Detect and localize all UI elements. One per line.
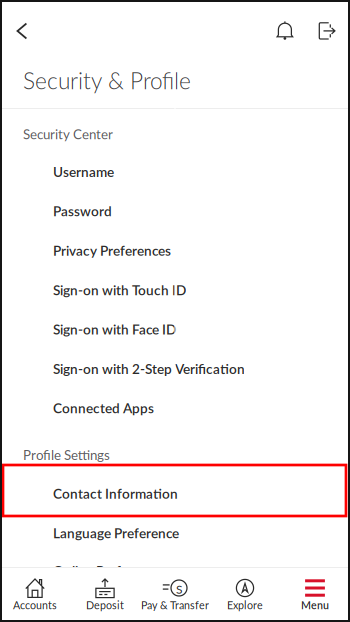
button[interactable]: S	[140, 568, 210, 622]
button[interactable]: Menu	[280, 568, 350, 622]
button[interactable]: Contact Information	[0, 474, 350, 513]
button[interactable]: Sign-on with 2-Step Verification	[0, 349, 350, 388]
button[interactable]: Online Preferences	[0, 553, 350, 592]
button[interactable]: Deposit	[70, 568, 140, 622]
button[interactable]: Sign-on with Face ID	[0, 310, 350, 349]
staticText: Accounts	[13, 599, 57, 611]
button[interactable]: Explore	[210, 568, 280, 622]
staticText: Deposit	[86, 599, 124, 611]
staticText: S	[176, 582, 183, 596]
staticText: Contact Information	[53, 485, 178, 502]
button[interactable]: Back	[2, 9, 42, 53]
button[interactable]: Accounts	[0, 568, 70, 622]
button[interactable]: Language Preference	[0, 513, 350, 553]
staticText: Explore	[227, 599, 263, 611]
button[interactable]: Password	[0, 191, 350, 231]
staticText: Language Preference	[53, 525, 179, 541]
staticText: Security Center	[23, 126, 113, 142]
staticText: Connected Apps	[53, 400, 154, 416]
staticText: Security & Profile	[23, 67, 191, 94]
staticText: Sign-on with 2-Step Verification	[53, 360, 245, 377]
button[interactable]: Notifications	[263, 9, 307, 53]
staticText: Online Preferences	[53, 563, 167, 579]
staticText: Menu	[301, 599, 329, 611]
button[interactable]: Sign out	[307, 9, 347, 53]
button[interactable]: Privacy Preferences	[0, 231, 350, 270]
button[interactable]: Connected Apps	[0, 388, 350, 428]
staticText: Pay & Transfer	[141, 599, 209, 611]
button[interactable]: Sign-on with Touch ID	[0, 270, 350, 310]
staticText: Password	[53, 203, 112, 219]
staticText: Sign-on with Touch ID	[53, 282, 186, 298]
staticText: Sign-on with Face ID	[53, 321, 176, 337]
button[interactable]: Username	[0, 152, 350, 191]
staticText: Username	[53, 163, 114, 180]
staticText: Privacy Preferences	[53, 242, 171, 259]
staticText: Profile Settings	[23, 447, 110, 463]
